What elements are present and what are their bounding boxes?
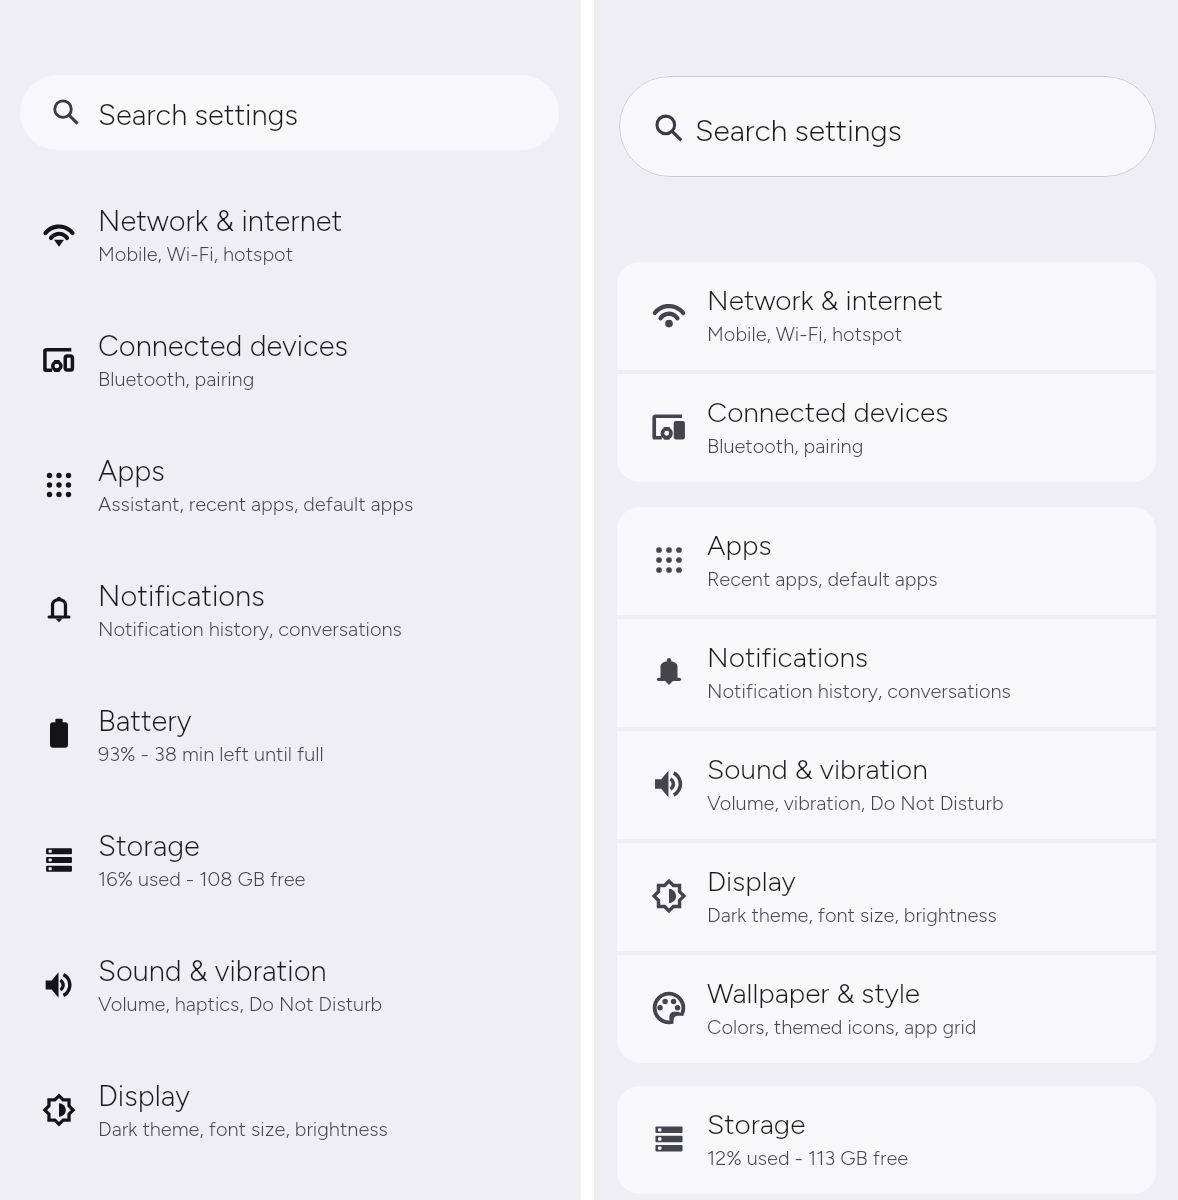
button[interactable]: Wallpaper & style [617,955,1156,1063]
button[interactable]: Apps [0,440,581,565]
staticText: Sound & vibration [98,953,327,988]
staticText: Volume, vibration, Do Not Disturb [707,791,1004,815]
staticText: Wallpaper & style [707,976,920,1010]
staticText: Apps [707,528,772,562]
button[interactable]: Display [0,1065,581,1190]
staticText: Connected devices [98,328,348,363]
staticText: Storage [707,1107,806,1141]
staticText: Network & internet [98,203,343,238]
staticText: Recent apps, default apps [707,567,938,591]
staticText: Notifications [707,640,868,674]
button[interactable]: Notifications [0,565,581,690]
staticText: Display [707,864,796,898]
button[interactable]: Search settings [619,76,1156,177]
staticText: Search settings [98,97,298,132]
staticText: Search settings [695,112,902,148]
button[interactable]: Storage [617,1086,1156,1194]
button[interactable]: Network & internet [0,190,581,315]
button[interactable]: Network & internet [617,262,1156,370]
button[interactable]: Storage [0,815,581,940]
staticText: Connected devices [707,395,949,429]
staticText: Bluetooth, pairing [707,434,864,458]
button[interactable]: Display [617,843,1156,951]
button[interactable]: Sound & vibration [0,940,581,1065]
button[interactable]: Connected devices [0,315,581,440]
button[interactable]: Battery [0,690,581,815]
button[interactable]: Notifications [617,619,1156,727]
staticText: 12% used - 113 GB free [707,1146,909,1170]
button[interactable]: Connected devices [617,374,1156,482]
staticText: Dark theme, font size, brightness [707,903,997,927]
staticText: Network & internet [707,283,943,317]
staticText: Notification history, conversations [98,617,402,641]
staticText: Bluetooth, pairing [98,367,255,391]
staticText: Notifications [98,578,265,613]
button[interactable]: Search settings [20,75,559,150]
staticText: Assistant, recent apps, default apps [98,492,414,516]
staticText: Colors, themed icons, app grid [707,1015,977,1039]
staticText: Mobile, Wi-Fi, hotspot [707,322,903,346]
staticText: Volume, haptics, Do Not Disturb [98,992,383,1016]
staticText: 16% used - 108 GB free [98,867,306,891]
staticText: Battery [98,703,192,738]
staticText: Apps [98,453,165,488]
staticText: 93% - 38 min left until full [98,742,324,766]
button[interactable]: Apps [617,507,1156,615]
staticText: Sound & vibration [707,752,928,786]
staticText: Storage [98,828,200,863]
button[interactable]: Sound & vibration [617,731,1156,839]
staticText: Display [98,1078,190,1113]
staticText: Dark theme, font size, brightness [98,1117,388,1141]
staticText: Notification history, conversations [707,679,1011,703]
staticText: Mobile, Wi-Fi, hotspot [98,242,294,266]
